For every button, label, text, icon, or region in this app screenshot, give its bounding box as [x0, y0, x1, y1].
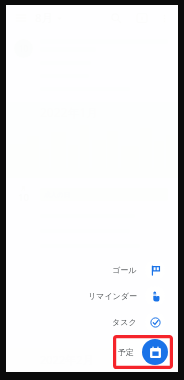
staticText: リマインダー [88, 291, 137, 301]
staticText: タスク [112, 317, 137, 327]
button[interactable]: 予定 [118, 339, 168, 365]
staticText: ゴール [112, 265, 137, 275]
staticText: 予定 [118, 347, 134, 357]
button[interactable]: ゴール [112, 260, 173, 280]
button[interactable]: タスク [112, 312, 173, 332]
button[interactable]: リマインダー [88, 286, 173, 306]
